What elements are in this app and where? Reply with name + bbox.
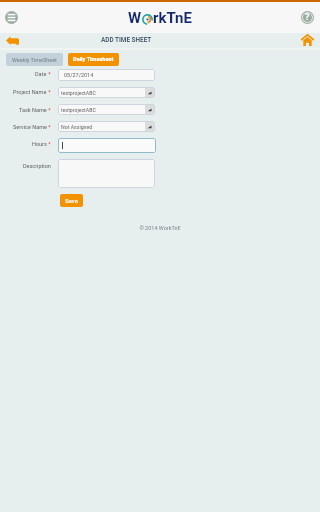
button[interactable]: Save: [60, 194, 83, 207]
button[interactable]: Daily Timesheet: [68, 53, 119, 66]
staticText: Date: [35, 71, 47, 77]
staticText: ?: [305, 12, 310, 23]
button[interactable]: [58, 138, 156, 153]
staticText: Not Assigned: [61, 124, 93, 130]
staticText: *: [47, 141, 51, 147]
staticText: Project Name: [13, 89, 47, 95]
staticText: *: [47, 71, 51, 77]
button[interactable]: Help: [301, 11, 314, 24]
button[interactable]: Home: [301, 34, 314, 46]
staticText: 05/27/2014: [64, 72, 94, 78]
staticText: *: [47, 124, 51, 130]
staticText: testprojectABC: [61, 107, 96, 113]
staticText: Daily Timesheet: [73, 56, 114, 63]
staticText: *: [47, 107, 51, 113]
button[interactable]: Weekly TimeSheet: [6, 53, 63, 66]
staticText: testprojectABC: [61, 90, 96, 96]
staticText: Hours: [32, 141, 47, 147]
button[interactable]: [58, 159, 155, 188]
button[interactable]: 05/27/2014: [58, 69, 155, 81]
staticText: rkTnE: [153, 9, 192, 27]
staticText: *: [47, 89, 51, 95]
button[interactable]: testprojectABC: [58, 104, 155, 115]
staticText: © 2014 WorkTnE: [0, 225, 320, 231]
staticText: Save: [65, 197, 78, 204]
button[interactable]: Back: [6, 36, 19, 45]
staticText: ADD TIME SHEET: [101, 36, 152, 44]
button[interactable]: testprojectABC: [58, 87, 155, 98]
staticText: Weekly TimeSheet: [12, 57, 57, 63]
staticText: Task Name: [19, 107, 47, 113]
staticText: Service Name: [13, 124, 47, 130]
button[interactable]: Open navigation menu: [5, 11, 18, 24]
staticText: W: [128, 9, 142, 27]
staticText: Description: [23, 163, 51, 169]
button[interactable]: Not Assigned: [58, 121, 155, 132]
